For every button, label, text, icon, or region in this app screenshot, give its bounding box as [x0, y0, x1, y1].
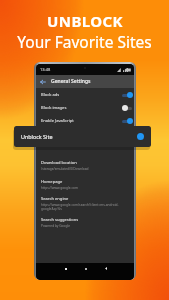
staticText: Search suggestions [41, 217, 79, 223]
button[interactable]: Search suggestions [41, 213, 129, 232]
staticText: General Settings [51, 78, 91, 85]
staticText: 13:48 [40, 67, 51, 72]
staticText: UNBLOCK [47, 11, 123, 31]
button[interactable]: Download location [41, 156, 129, 175]
staticText: Search engine [41, 196, 69, 202]
staticText: Block images [41, 105, 67, 111]
staticText: Download location [41, 160, 77, 166]
staticText: https://www.google.com/search?client=ms-… [41, 203, 129, 211]
button[interactable]: Block ads [41, 88, 132, 101]
button[interactable]: Homepage [41, 175, 129, 194]
staticText: /storage/emulated/0/Download [41, 167, 89, 171]
staticText: https://www.google.com [41, 186, 78, 190]
button[interactable]: Search engine [41, 194, 129, 213]
button[interactable]: Home [80, 263, 91, 274]
staticText: Unblock Site [21, 133, 53, 140]
button[interactable]: Back [100, 263, 111, 274]
staticText: Homepage [41, 179, 63, 185]
button[interactable]: Enable JavaScript [41, 114, 132, 127]
button[interactable]: Block images [41, 101, 132, 114]
staticText: Enable JavaScript [41, 118, 74, 124]
button[interactable]: Back [40, 75, 130, 88]
staticText: Powered by Google [41, 224, 71, 228]
button[interactable]: Unblock Site [21, 126, 144, 147]
staticText: Your Favorite Sites [17, 31, 152, 52]
button[interactable]: Recents [60, 263, 71, 274]
staticText: Block ads [41, 92, 60, 98]
other: Back [40, 79, 46, 85]
